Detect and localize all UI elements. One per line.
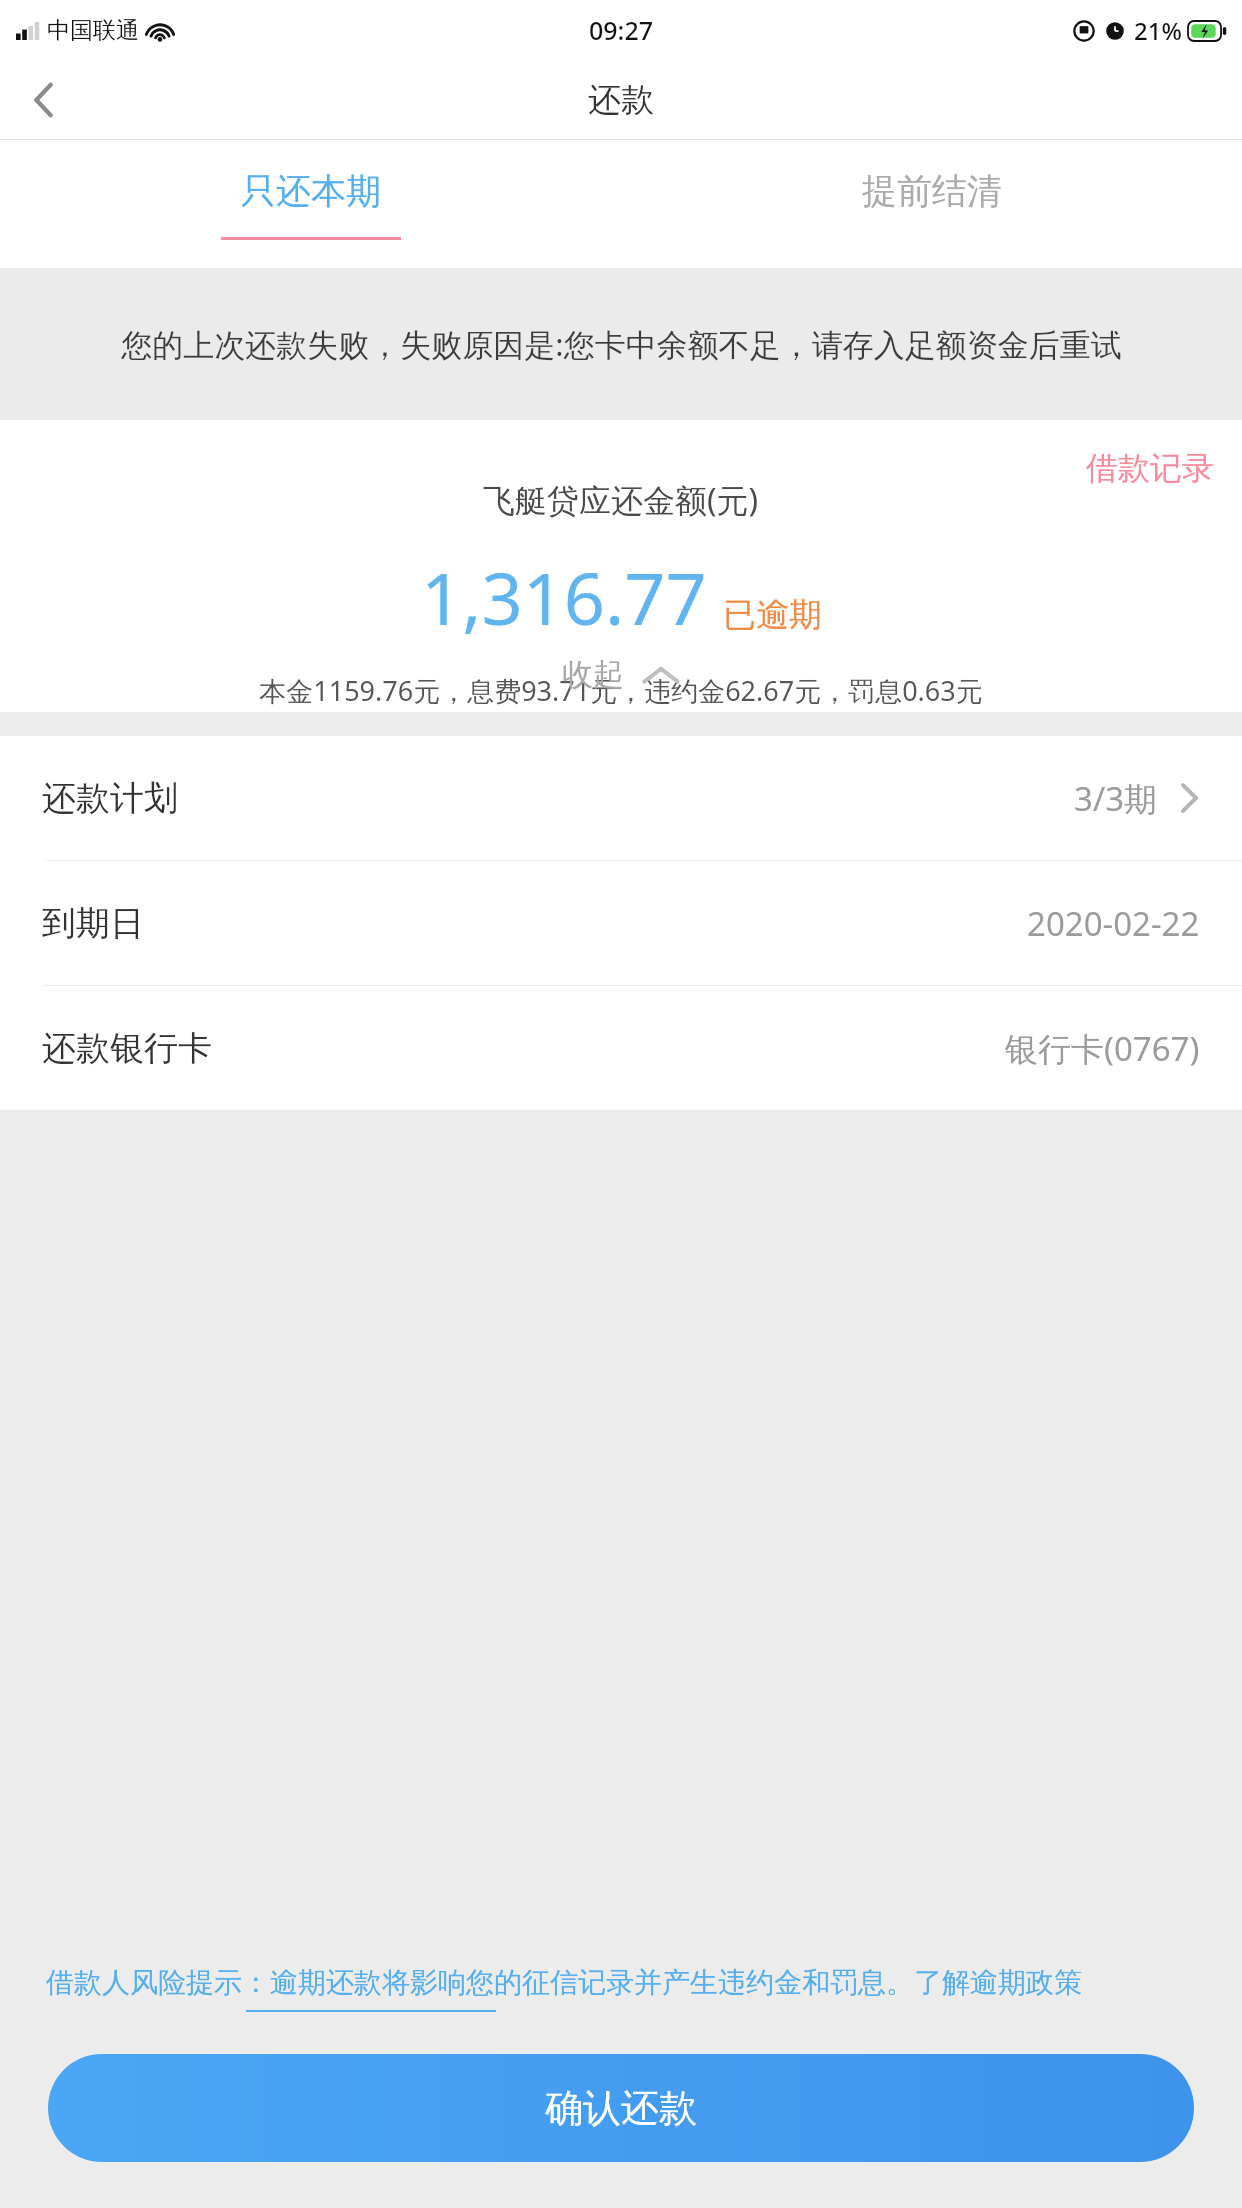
staticText: 还款银行卡 — [42, 1027, 212, 1070]
staticText: 09:27 — [589, 13, 654, 47]
staticText: 借款人风险提示：逾期还款将影响您的征信记录并产生违约金和罚息。了解逾期政策 — [46, 1965, 1082, 2000]
staticText: 到期日 — [42, 902, 144, 945]
staticText: 21% — [1134, 14, 1182, 47]
staticText: 银行卡(0767) — [1005, 1026, 1200, 1071]
staticText: 提前结清 — [862, 169, 1002, 213]
button[interactable]: 还款计划 — [0, 736, 1242, 860]
button[interactable]: Back — [0, 60, 88, 140]
staticText: 确认还款 — [545, 2084, 697, 2132]
button[interactable]: 收起 — [532, 647, 710, 702]
button[interactable]: 借款记录 — [1058, 442, 1242, 494]
staticText: 3/3期 — [1074, 776, 1158, 821]
staticText: 您的上次还款失败，失败原因是:您卡中余额不足，请存入足额资金后重试 — [121, 323, 1122, 365]
staticText: 1,316.77 — [421, 548, 707, 646]
staticText: 只还本期 — [241, 169, 381, 213]
staticText: 2020-02-22 — [1027, 901, 1200, 946]
button[interactable]: 只还本期 — [0, 140, 621, 268]
button[interactable]: 确认还款 — [48, 2054, 1194, 2162]
button[interactable]: 还款银行卡 — [0, 986, 1242, 1110]
staticText: 还款计划 — [42, 777, 178, 820]
staticText: 借款记录 — [1086, 448, 1214, 488]
button[interactable]: 到期日 — [0, 861, 1242, 985]
staticText: 飞艇贷应还金额(元) — [483, 478, 759, 522]
staticText: 中国联通 — [47, 16, 139, 45]
staticText: 本金1159.76元，息费93.71元，违约金62.67元，罚息0.63元 — [259, 672, 983, 709]
button[interactable]: 提前结清 — [621, 140, 1242, 268]
staticText: 收起 — [562, 655, 624, 694]
staticText: 还款 — [588, 79, 654, 121]
staticText: 已逾期 — [723, 594, 822, 636]
